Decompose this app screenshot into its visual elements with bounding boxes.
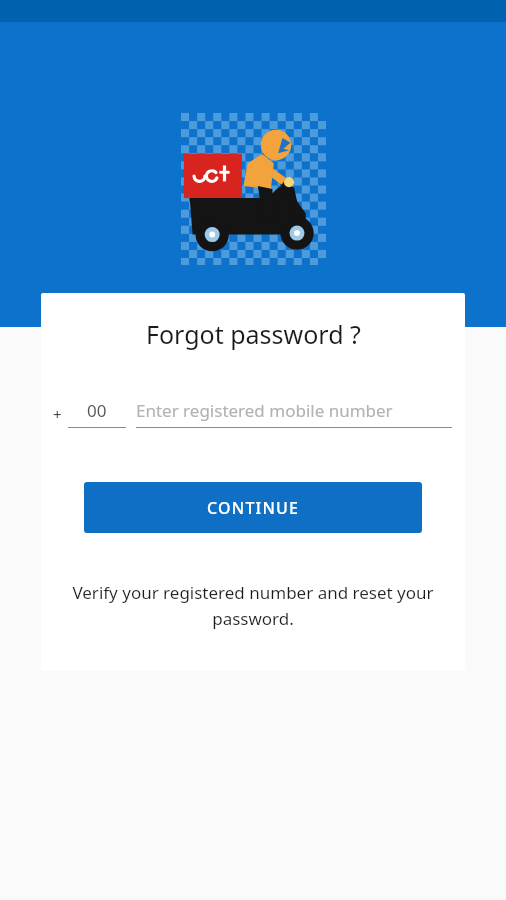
staticText: + bbox=[53, 404, 62, 424]
staticText: Verify your registered number and reset … bbox=[63, 581, 443, 630]
staticText: CONTINUE bbox=[207, 497, 300, 519]
staticText: 00 bbox=[87, 399, 107, 422]
button[interactable]: Enter registered mobile number bbox=[136, 399, 452, 428]
staticText: Enter registered mobile number bbox=[136, 399, 393, 422]
staticText: Forgot password ? bbox=[146, 317, 361, 351]
button[interactable]: 00 bbox=[68, 399, 126, 428]
button[interactable]: CONTINUE bbox=[84, 482, 422, 533]
